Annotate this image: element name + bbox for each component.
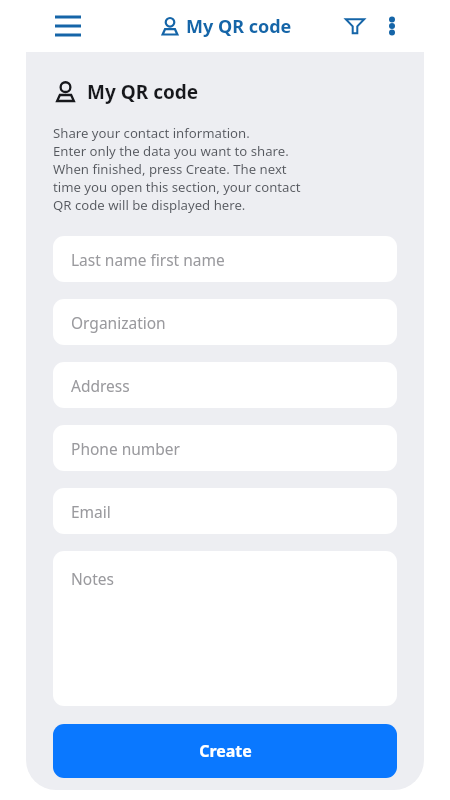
button[interactable]: Phone number — [53, 425, 397, 471]
button[interactable]: Open navigation menu — [48, 6, 88, 46]
button[interactable]: Filter — [336, 7, 374, 45]
staticText: Address — [71, 375, 130, 396]
staticText: My QR code — [186, 14, 292, 39]
button[interactable]: Create — [53, 724, 397, 778]
staticText: My QR code — [87, 79, 199, 105]
button[interactable]: More options — [374, 8, 410, 44]
button[interactable]: Notes — [53, 551, 397, 706]
button[interactable]: Email — [53, 488, 397, 534]
staticText: Notes — [71, 568, 114, 589]
staticText: Phone number — [71, 438, 181, 459]
button[interactable]: Last name first name — [53, 236, 397, 282]
button[interactable]: Address — [53, 362, 397, 408]
button[interactable]: Organization — [53, 299, 397, 345]
staticText: Organization — [71, 312, 166, 333]
staticText: Last name first name — [71, 249, 225, 270]
staticText: Share your contact information. Enter on… — [53, 124, 301, 214]
staticText: Email — [71, 501, 111, 522]
staticText: Create — [199, 740, 252, 762]
